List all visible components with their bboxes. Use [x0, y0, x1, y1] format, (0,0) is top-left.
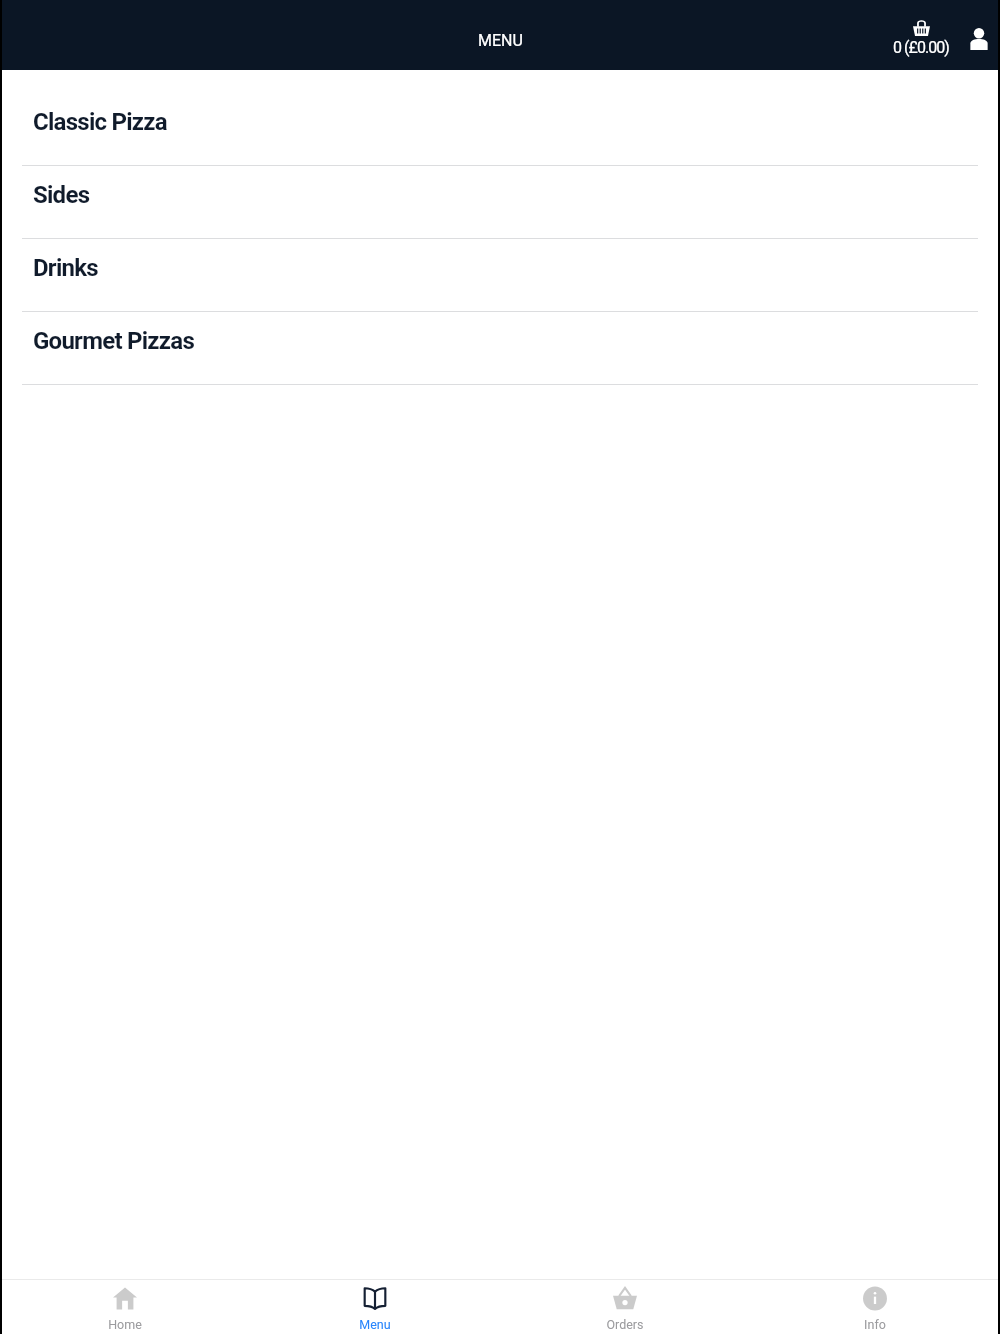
button[interactable]: Home — [0, 1280, 250, 1334]
staticText: Menu — [359, 1317, 391, 1332]
staticText: Home — [108, 1317, 142, 1332]
staticText: Sides — [33, 181, 90, 209]
button[interactable]: Classic Pizza — [0, 93, 1000, 166]
button[interactable]: Info — [750, 1280, 1000, 1334]
staticText: Drinks — [33, 254, 98, 282]
staticText: Orders — [606, 1317, 644, 1332]
staticText: Info — [864, 1317, 886, 1332]
button[interactable]: Gourmet Pizzas — [0, 312, 1000, 385]
staticText: MENU — [478, 31, 523, 50]
button[interactable]: Account — [964, 20, 994, 54]
button[interactable]: Orders — [500, 1280, 750, 1334]
staticText: Classic Pizza — [33, 108, 167, 136]
button[interactable]: Basket — [887, 15, 955, 59]
button[interactable]: Menu — [250, 1280, 500, 1334]
button[interactable]: Drinks — [0, 239, 1000, 312]
staticText: Gourmet Pizzas — [33, 327, 194, 355]
staticText: 0 (£0.00) — [893, 38, 949, 57]
button[interactable]: Sides — [0, 166, 1000, 239]
